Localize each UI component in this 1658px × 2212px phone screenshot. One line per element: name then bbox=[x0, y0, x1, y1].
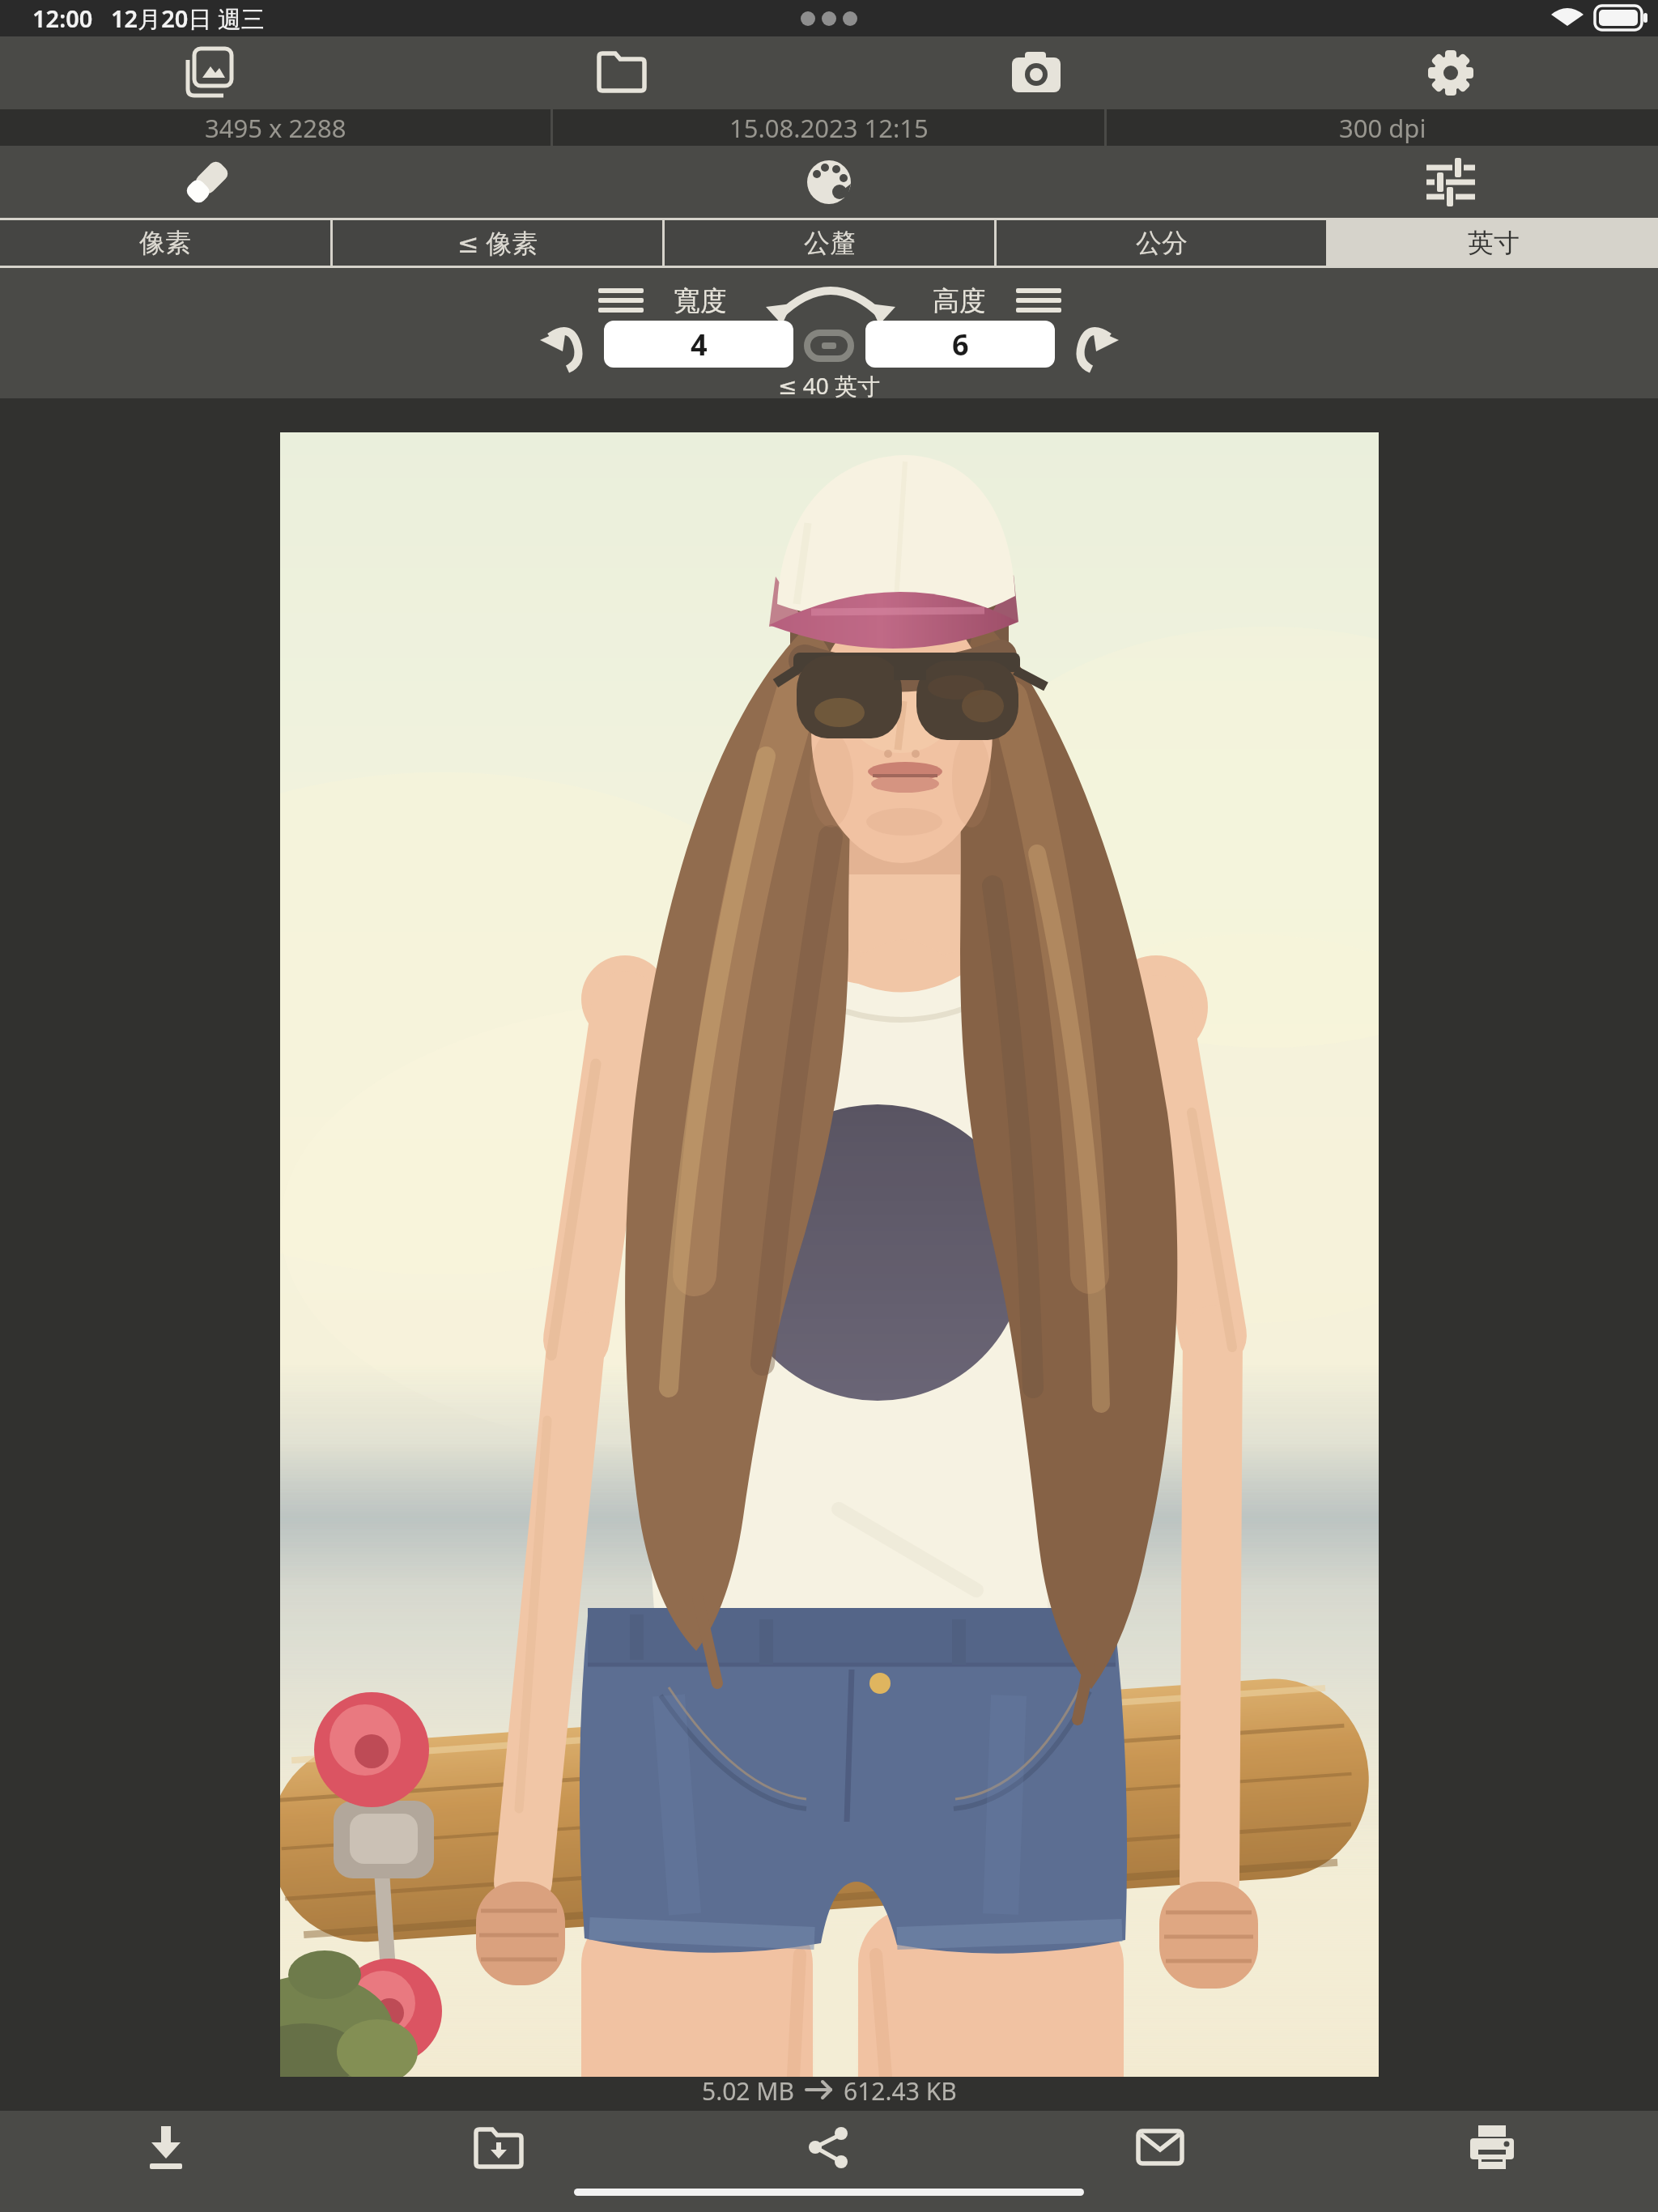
button[interactable] bbox=[0, 36, 414, 109]
staticText: 12:00 12月20日 週三 bbox=[32, 2, 265, 35]
button[interactable] bbox=[1326, 2111, 1658, 2184]
button[interactable] bbox=[586, 275, 656, 325]
button[interactable]: 公釐 bbox=[665, 220, 994, 266]
button[interactable] bbox=[768, 146, 890, 218]
button[interactable] bbox=[662, 2111, 994, 2184]
button[interactable] bbox=[994, 2111, 1326, 2184]
button[interactable]: 4 bbox=[604, 321, 793, 368]
staticText: 公釐 bbox=[804, 227, 856, 259]
button[interactable] bbox=[147, 146, 268, 218]
button[interactable]: 英寸 bbox=[1329, 220, 1658, 266]
button[interactable] bbox=[331, 2111, 662, 2184]
button[interactable] bbox=[1004, 275, 1073, 325]
staticText: 4 bbox=[691, 325, 708, 364]
staticText: 英寸 bbox=[1468, 227, 1520, 259]
button[interactable] bbox=[530, 318, 598, 375]
staticText: 5.02 MB bbox=[702, 2074, 795, 2105]
staticText: 像素 bbox=[139, 227, 191, 259]
button[interactable] bbox=[414, 36, 829, 109]
button[interactable]: ≤ 像素 bbox=[333, 220, 662, 266]
button[interactable] bbox=[1390, 146, 1511, 218]
button[interactable]: 像素 bbox=[0, 220, 330, 266]
staticText: 高度 bbox=[907, 284, 1012, 318]
staticText: 300 dpi bbox=[1339, 111, 1426, 145]
staticText: ≤ 像素 bbox=[457, 225, 538, 261]
button[interactable]: 公分 bbox=[997, 220, 1326, 266]
button[interactable] bbox=[829, 36, 1243, 109]
staticText: ≤ 40 英寸 bbox=[0, 370, 1658, 401]
staticText: 612.43 KB bbox=[844, 2074, 957, 2105]
button[interactable] bbox=[1243, 36, 1658, 109]
button[interactable]: 6 bbox=[865, 321, 1055, 368]
staticText: 寬度 bbox=[648, 284, 753, 318]
button[interactable] bbox=[0, 2111, 331, 2184]
staticText: 公分 bbox=[1136, 227, 1188, 259]
button[interactable] bbox=[1061, 318, 1129, 375]
staticText: 3495 x 2288 bbox=[205, 111, 346, 145]
staticText: 6 bbox=[952, 325, 969, 364]
staticText: 15.08.2023 12:15 bbox=[729, 111, 929, 145]
